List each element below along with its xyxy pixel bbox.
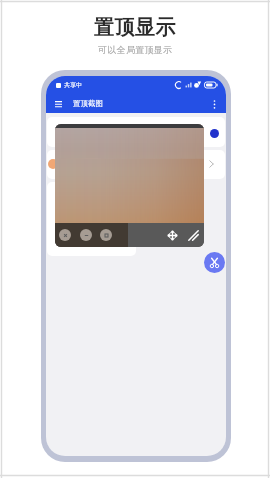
staticText: 置顶截图 — [73, 99, 103, 108]
staticText: 可以全局置顶显示 — [98, 44, 173, 55]
staticText: 共享中 — [64, 81, 82, 89]
button[interactable]: Maximize — [100, 229, 112, 241]
button[interactable]: Menu — [51, 97, 65, 111]
button[interactable] — [47, 117, 225, 147]
staticText: 置顶显示 — [94, 15, 176, 40]
button[interactable]: Minimize — [80, 229, 92, 241]
button[interactable]: Screenshot — [204, 252, 225, 273]
button[interactable]: More options — [207, 97, 221, 111]
button[interactable]: Move — [164, 227, 180, 243]
button[interactable]: Close — [59, 229, 71, 241]
button[interactable]: Resize — [185, 227, 201, 243]
button[interactable] — [47, 150, 225, 179]
